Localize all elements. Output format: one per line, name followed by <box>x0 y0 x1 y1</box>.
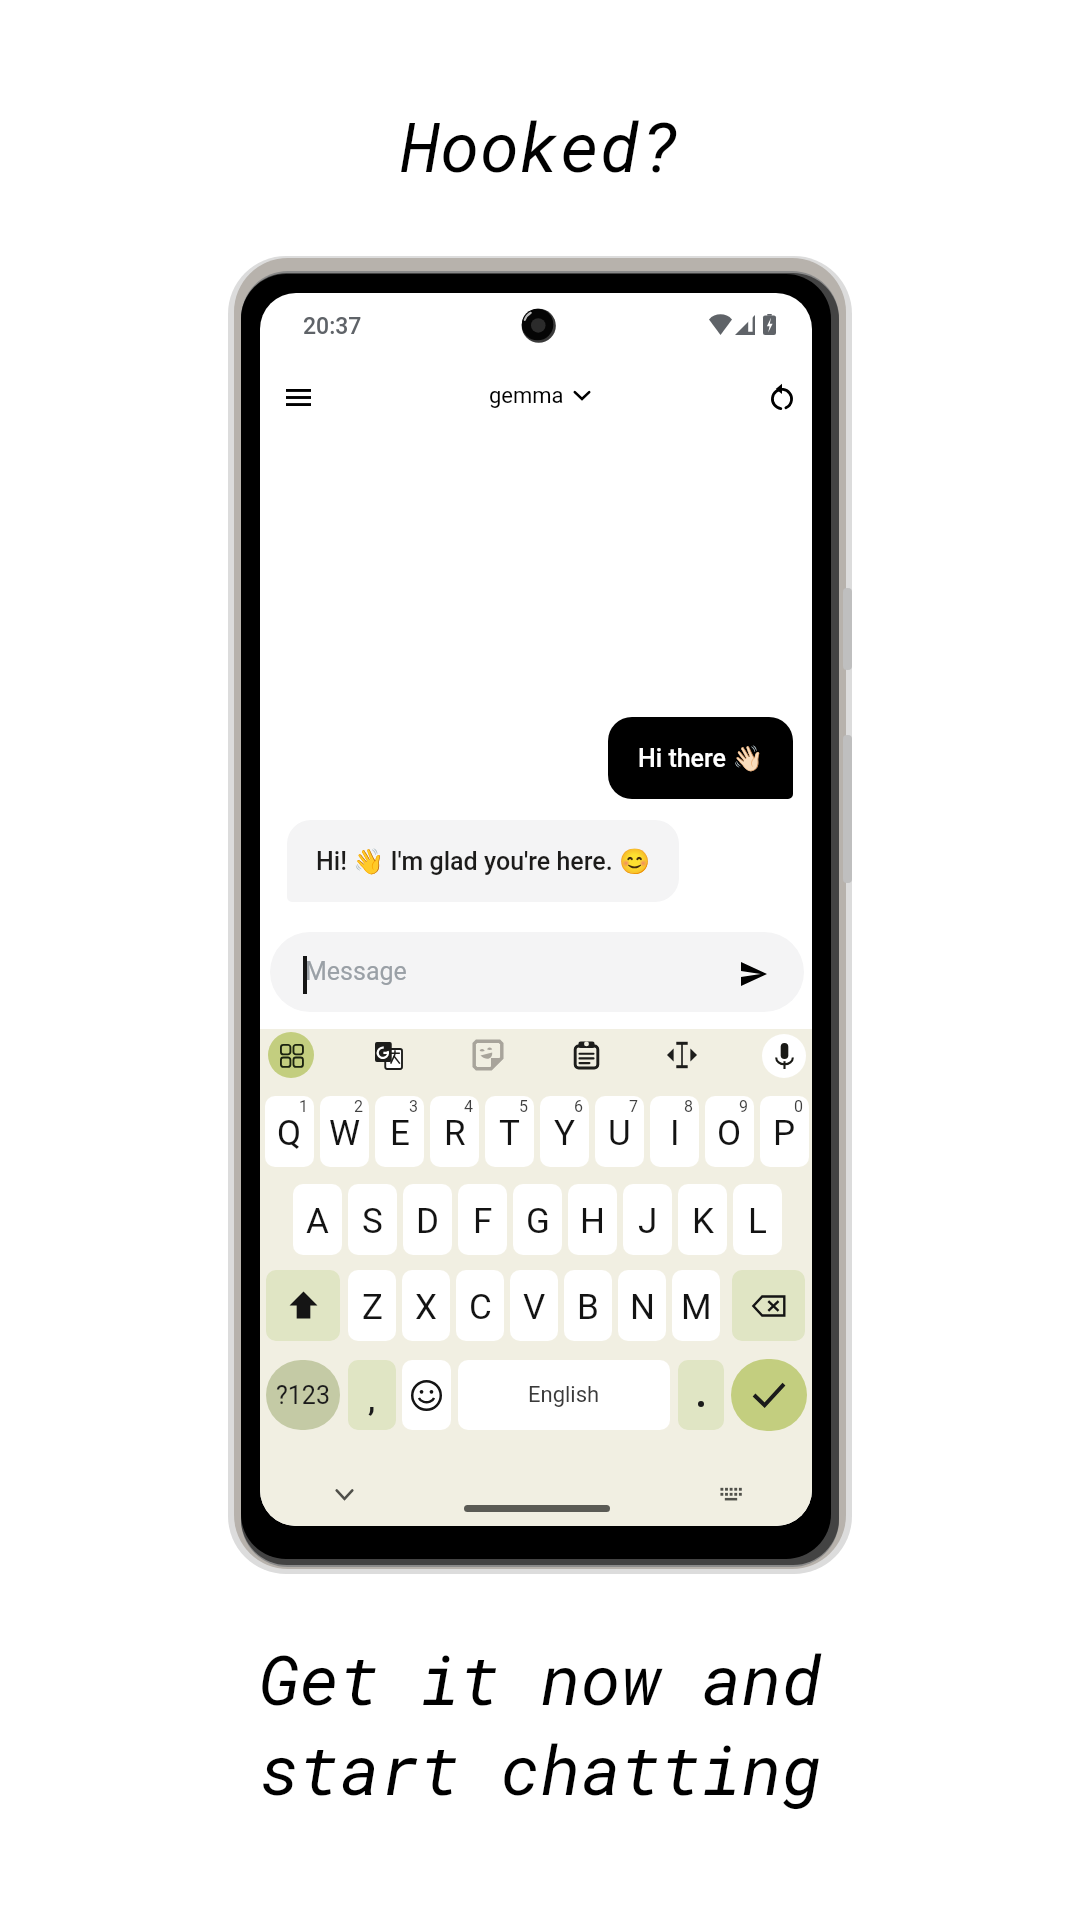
staticText: D <box>416 1201 439 1242</box>
staticText: Hooked? <box>400 101 680 191</box>
staticText: S <box>362 1201 383 1242</box>
button[interactable]: X <box>402 1270 450 1341</box>
staticText: gemma <box>489 383 564 409</box>
button[interactable]: Clipboard <box>564 1033 608 1077</box>
staticText: U <box>608 1113 631 1154</box>
staticText: Q <box>277 1113 302 1154</box>
button[interactable]: Menu <box>271 370 325 424</box>
staticText: T <box>499 1113 520 1154</box>
button[interactable]: E <box>375 1096 424 1167</box>
button[interactable]: G <box>513 1184 562 1255</box>
button[interactable]: Send <box>730 950 778 998</box>
button[interactable]: L <box>733 1184 782 1255</box>
button[interactable]: K <box>678 1184 727 1255</box>
staticText: B <box>577 1287 599 1328</box>
button[interactable]: Backspace <box>732 1270 805 1341</box>
button[interactable]: Change keyboard <box>711 1474 751 1514</box>
staticText: I <box>670 1113 680 1154</box>
button[interactable]: M <box>672 1270 720 1341</box>
staticText: 20:37 <box>303 313 362 340</box>
staticText: C <box>469 1287 492 1328</box>
button[interactable]: , <box>348 1360 396 1430</box>
staticText: 4 <box>464 1097 473 1116</box>
staticText: 9 <box>739 1097 748 1116</box>
staticText: Hi! 👋 I'm glad you're here. 😊 <box>316 847 651 876</box>
staticText: 6 <box>574 1097 583 1116</box>
button[interactable]: Refresh <box>755 372 809 426</box>
staticText: K <box>692 1201 714 1242</box>
staticText: H <box>580 1201 605 1242</box>
button[interactable]: W <box>320 1096 369 1167</box>
staticText: E <box>390 1113 410 1154</box>
button[interactable]: Apps <box>268 1032 314 1078</box>
button[interactable]: Hi! 👋 I'm glad you're here. 😊 <box>287 820 679 902</box>
staticText: J <box>638 1201 658 1242</box>
button[interactable]: Hi there 👋🏻 <box>608 717 793 799</box>
staticText: P <box>773 1113 796 1154</box>
staticText: A <box>306 1201 329 1242</box>
staticText: Y <box>554 1113 576 1154</box>
button[interactable]: V <box>510 1270 558 1341</box>
button[interactable]: C <box>456 1270 504 1341</box>
button[interactable]: Emoji <box>402 1360 451 1430</box>
staticText: 3 <box>409 1097 418 1116</box>
staticText: 0 <box>794 1097 803 1116</box>
button[interactable]: N <box>618 1270 666 1341</box>
button[interactable]: A <box>293 1184 342 1255</box>
button[interactable]: U <box>595 1096 644 1167</box>
staticText: N <box>630 1287 655 1328</box>
staticText: G <box>526 1201 550 1242</box>
button[interactable]: Message <box>270 932 804 1012</box>
button[interactable]: D <box>403 1184 452 1255</box>
staticText: 2 <box>354 1097 363 1116</box>
staticText: V <box>523 1287 546 1328</box>
button[interactable]: Hide keyboard <box>324 1474 364 1514</box>
button[interactable]: Voice input <box>762 1034 806 1078</box>
staticText: ?123 <box>276 1381 330 1410</box>
staticText: F <box>473 1201 493 1242</box>
button[interactable]: Q <box>265 1096 314 1167</box>
button[interactable]: J <box>623 1184 672 1255</box>
staticText: O <box>717 1113 742 1154</box>
button[interactable]: S <box>348 1184 397 1255</box>
staticText: 7 <box>629 1097 638 1116</box>
staticText: English <box>528 1382 600 1408</box>
staticText: Get it now and start chatting <box>259 1633 822 1814</box>
staticText: R <box>444 1113 466 1154</box>
staticText: 8 <box>684 1097 693 1116</box>
button[interactable]: Text editing <box>660 1033 704 1077</box>
button[interactable]: F <box>458 1184 507 1255</box>
button[interactable]: I <box>650 1096 699 1167</box>
button[interactable]: gemma <box>489 382 590 408</box>
staticText: L <box>748 1201 767 1242</box>
staticText: Z <box>362 1287 383 1328</box>
button[interactable]: English <box>458 1360 670 1430</box>
button[interactable]: Shift <box>266 1270 340 1341</box>
staticText: , <box>368 1383 376 1418</box>
button[interactable]: P <box>760 1096 809 1167</box>
staticText: M <box>681 1287 712 1328</box>
button[interactable]: R <box>430 1096 479 1167</box>
staticText: X <box>415 1287 437 1328</box>
staticText: Message <box>305 957 407 986</box>
button[interactable]: Y <box>540 1096 589 1167</box>
button[interactable]: Enter <box>731 1359 807 1431</box>
button[interactable]: Translate <box>366 1033 410 1077</box>
button[interactable]: H <box>568 1184 617 1255</box>
staticText: Hi there 👋🏻 <box>638 744 764 773</box>
button[interactable]: Z <box>348 1270 396 1341</box>
button[interactable]: Stickers <box>466 1033 510 1077</box>
button[interactable] <box>678 1360 724 1430</box>
button[interactable]: ?123 <box>266 1360 340 1430</box>
staticText: 5 <box>519 1097 528 1116</box>
button[interactable]: O <box>705 1096 754 1167</box>
button[interactable]: T <box>485 1096 534 1167</box>
button[interactable]: B <box>564 1270 612 1341</box>
staticText: W <box>329 1113 361 1154</box>
staticText: 1 <box>299 1097 308 1116</box>
